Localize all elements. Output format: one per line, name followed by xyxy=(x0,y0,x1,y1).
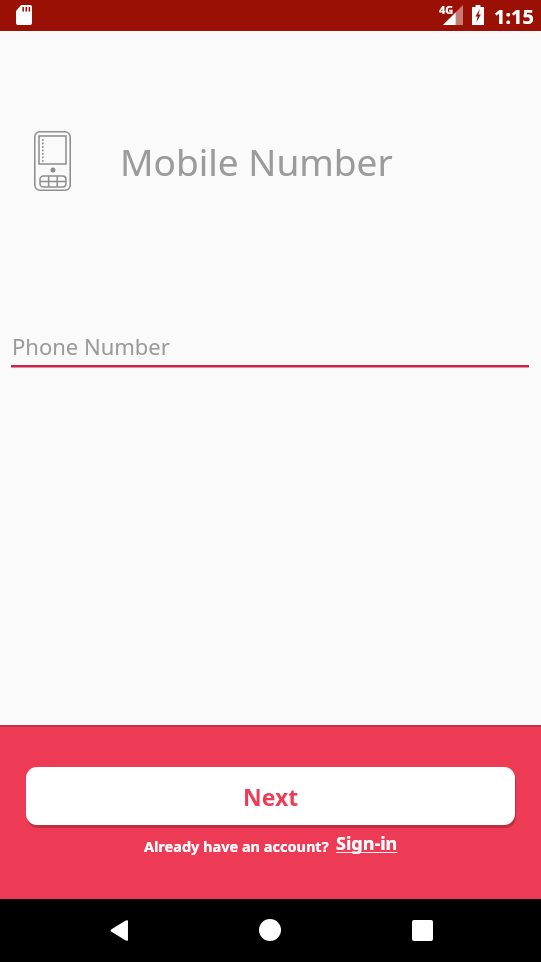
staticText: Phone Number xyxy=(12,331,170,361)
staticText: Sign-in xyxy=(336,831,398,856)
staticText: Already have an account? xyxy=(144,836,329,856)
button[interactable]: Next xyxy=(26,767,515,825)
button[interactable]: Home xyxy=(245,905,295,955)
staticText: Mobile Number xyxy=(120,136,393,186)
button[interactable]: Phone Number xyxy=(11,325,529,369)
staticText: 1:15 xyxy=(494,3,534,30)
button[interactable]: Back xyxy=(94,905,144,955)
staticText: 4G xyxy=(439,2,454,17)
button[interactable]: Recents xyxy=(397,905,447,955)
staticText: Next xyxy=(243,781,299,812)
button[interactable]: Sign-in xyxy=(336,831,398,856)
